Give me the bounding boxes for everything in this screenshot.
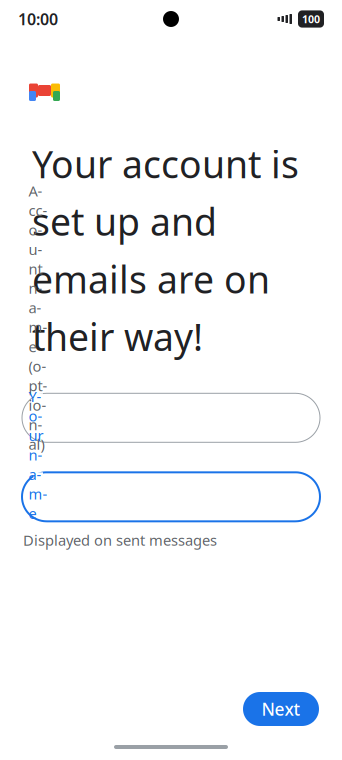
staticText: Account name (optional) — [28, 181, 47, 454]
button[interactable]: Your name — [22, 472, 320, 521]
staticText: Displayed on sent messages — [23, 530, 217, 550]
staticText: Your account is set up and emails are on… — [32, 139, 299, 361]
button[interactable]: Next — [243, 692, 319, 726]
staticText: 10:00 — [18, 8, 58, 30]
button[interactable]: Account name (optional) — [22, 393, 320, 442]
staticText: Next — [261, 697, 300, 720]
staticText: Your name — [28, 387, 47, 523]
staticText: 100 — [302, 12, 320, 26]
